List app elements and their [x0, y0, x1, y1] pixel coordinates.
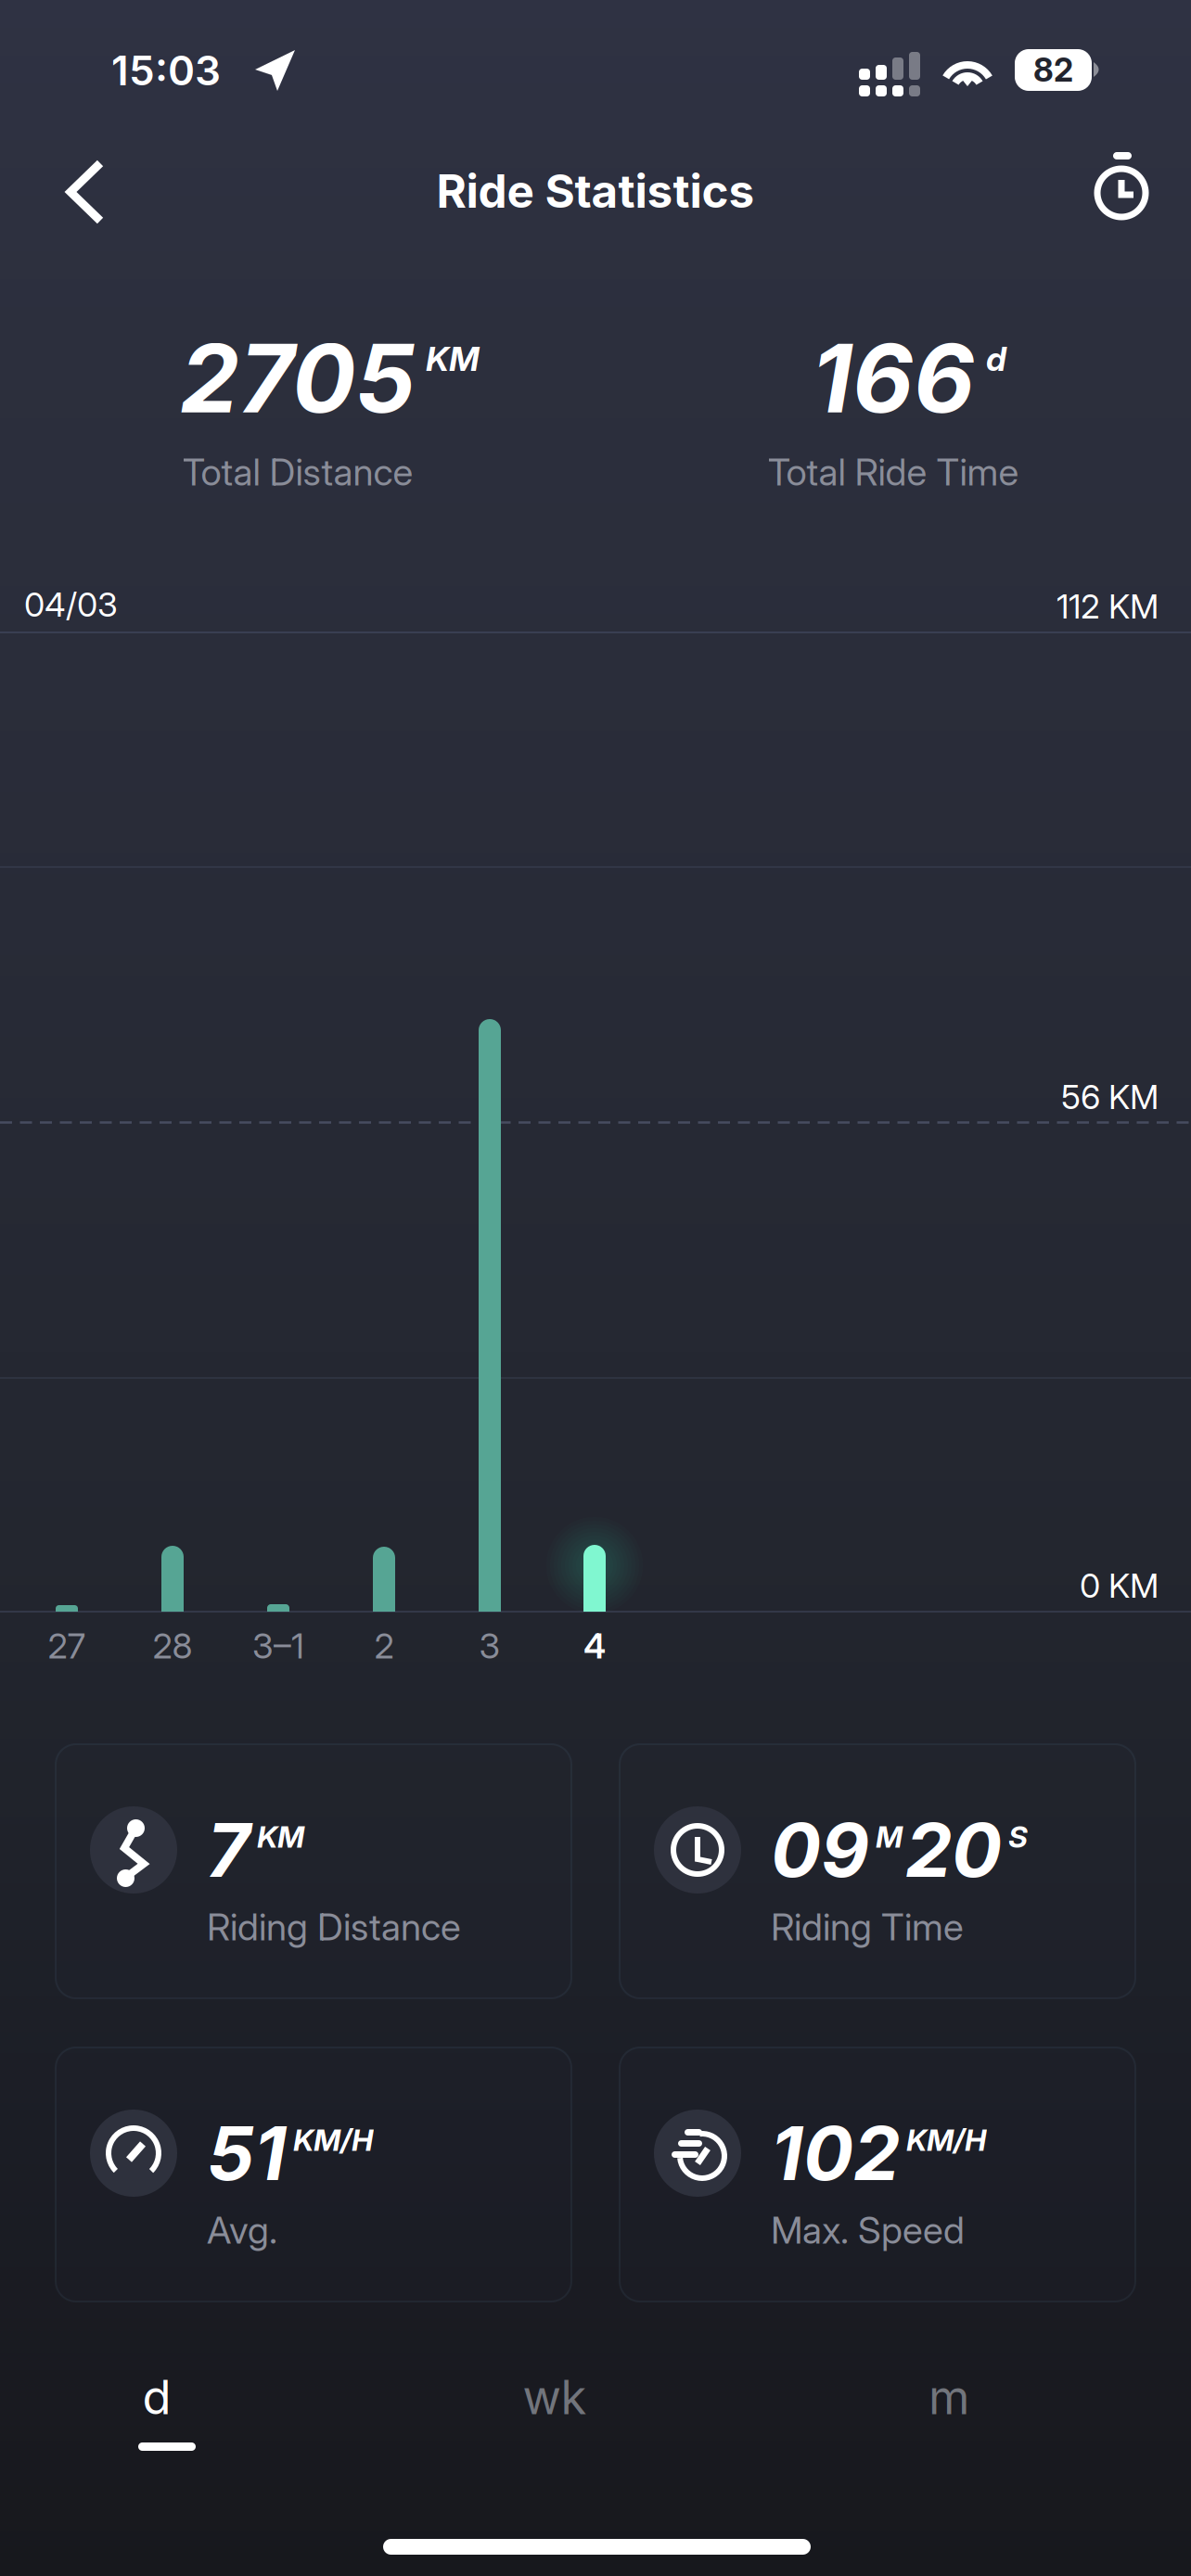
staticText: S: [1008, 1819, 1028, 1855]
staticText: wk: [523, 2369, 587, 2425]
staticText: 112 KM: [1057, 586, 1159, 627]
staticText: Total Ride Time: [768, 450, 1019, 494]
staticText: m: [928, 2369, 969, 2425]
staticText: KM/H: [906, 2122, 986, 2158]
staticText: 04/03: [24, 584, 118, 625]
button[interactable]: 102: [620, 2047, 1135, 2302]
staticText: Total Distance: [182, 450, 413, 494]
staticText: 3: [479, 1625, 500, 1667]
button[interactable]: 09: [620, 1744, 1135, 1998]
staticText: 2: [374, 1625, 394, 1667]
staticText: 7: [207, 1805, 250, 1895]
staticText: 51: [207, 2108, 287, 2198]
staticText: 09: [771, 1805, 869, 1895]
staticText: d: [986, 339, 1006, 379]
staticText: d: [142, 2369, 171, 2425]
staticText: 56 KM: [1061, 1077, 1159, 1117]
staticText: KM: [257, 1819, 304, 1855]
staticText: 102: [771, 2108, 900, 2198]
button[interactable]: Stopwatch: [1069, 139, 1176, 247]
staticText: 28: [153, 1625, 192, 1667]
staticText: 3–1: [252, 1625, 304, 1667]
staticText: 2705: [180, 321, 416, 435]
staticText: KM: [426, 339, 480, 379]
staticText: 82: [1033, 51, 1073, 89]
staticText: 166: [812, 321, 975, 435]
button[interactable]: 51: [56, 2047, 571, 2302]
button[interactable]: wk: [388, 2337, 722, 2494]
staticText: 27: [48, 1625, 86, 1667]
staticText: 20: [905, 1805, 1002, 1895]
staticText: Max. Speed: [771, 2208, 965, 2253]
staticText: Ride Statistics: [436, 163, 755, 219]
button[interactable]: Back: [33, 141, 145, 243]
staticText: Avg.: [207, 2208, 277, 2253]
button[interactable]: d: [0, 2337, 334, 2494]
button[interactable]: 7: [56, 1744, 571, 1998]
staticText: 0 KM: [1080, 1565, 1159, 1606]
button[interactable]: m: [782, 2337, 1116, 2494]
staticText: 15:03: [111, 46, 221, 95]
staticText: Riding Distance: [207, 1904, 461, 1949]
staticText: KM/H: [293, 2122, 373, 2158]
staticText: M: [876, 1819, 903, 1855]
staticText: Riding Time: [771, 1904, 964, 1949]
staticText: 4: [583, 1625, 606, 1667]
